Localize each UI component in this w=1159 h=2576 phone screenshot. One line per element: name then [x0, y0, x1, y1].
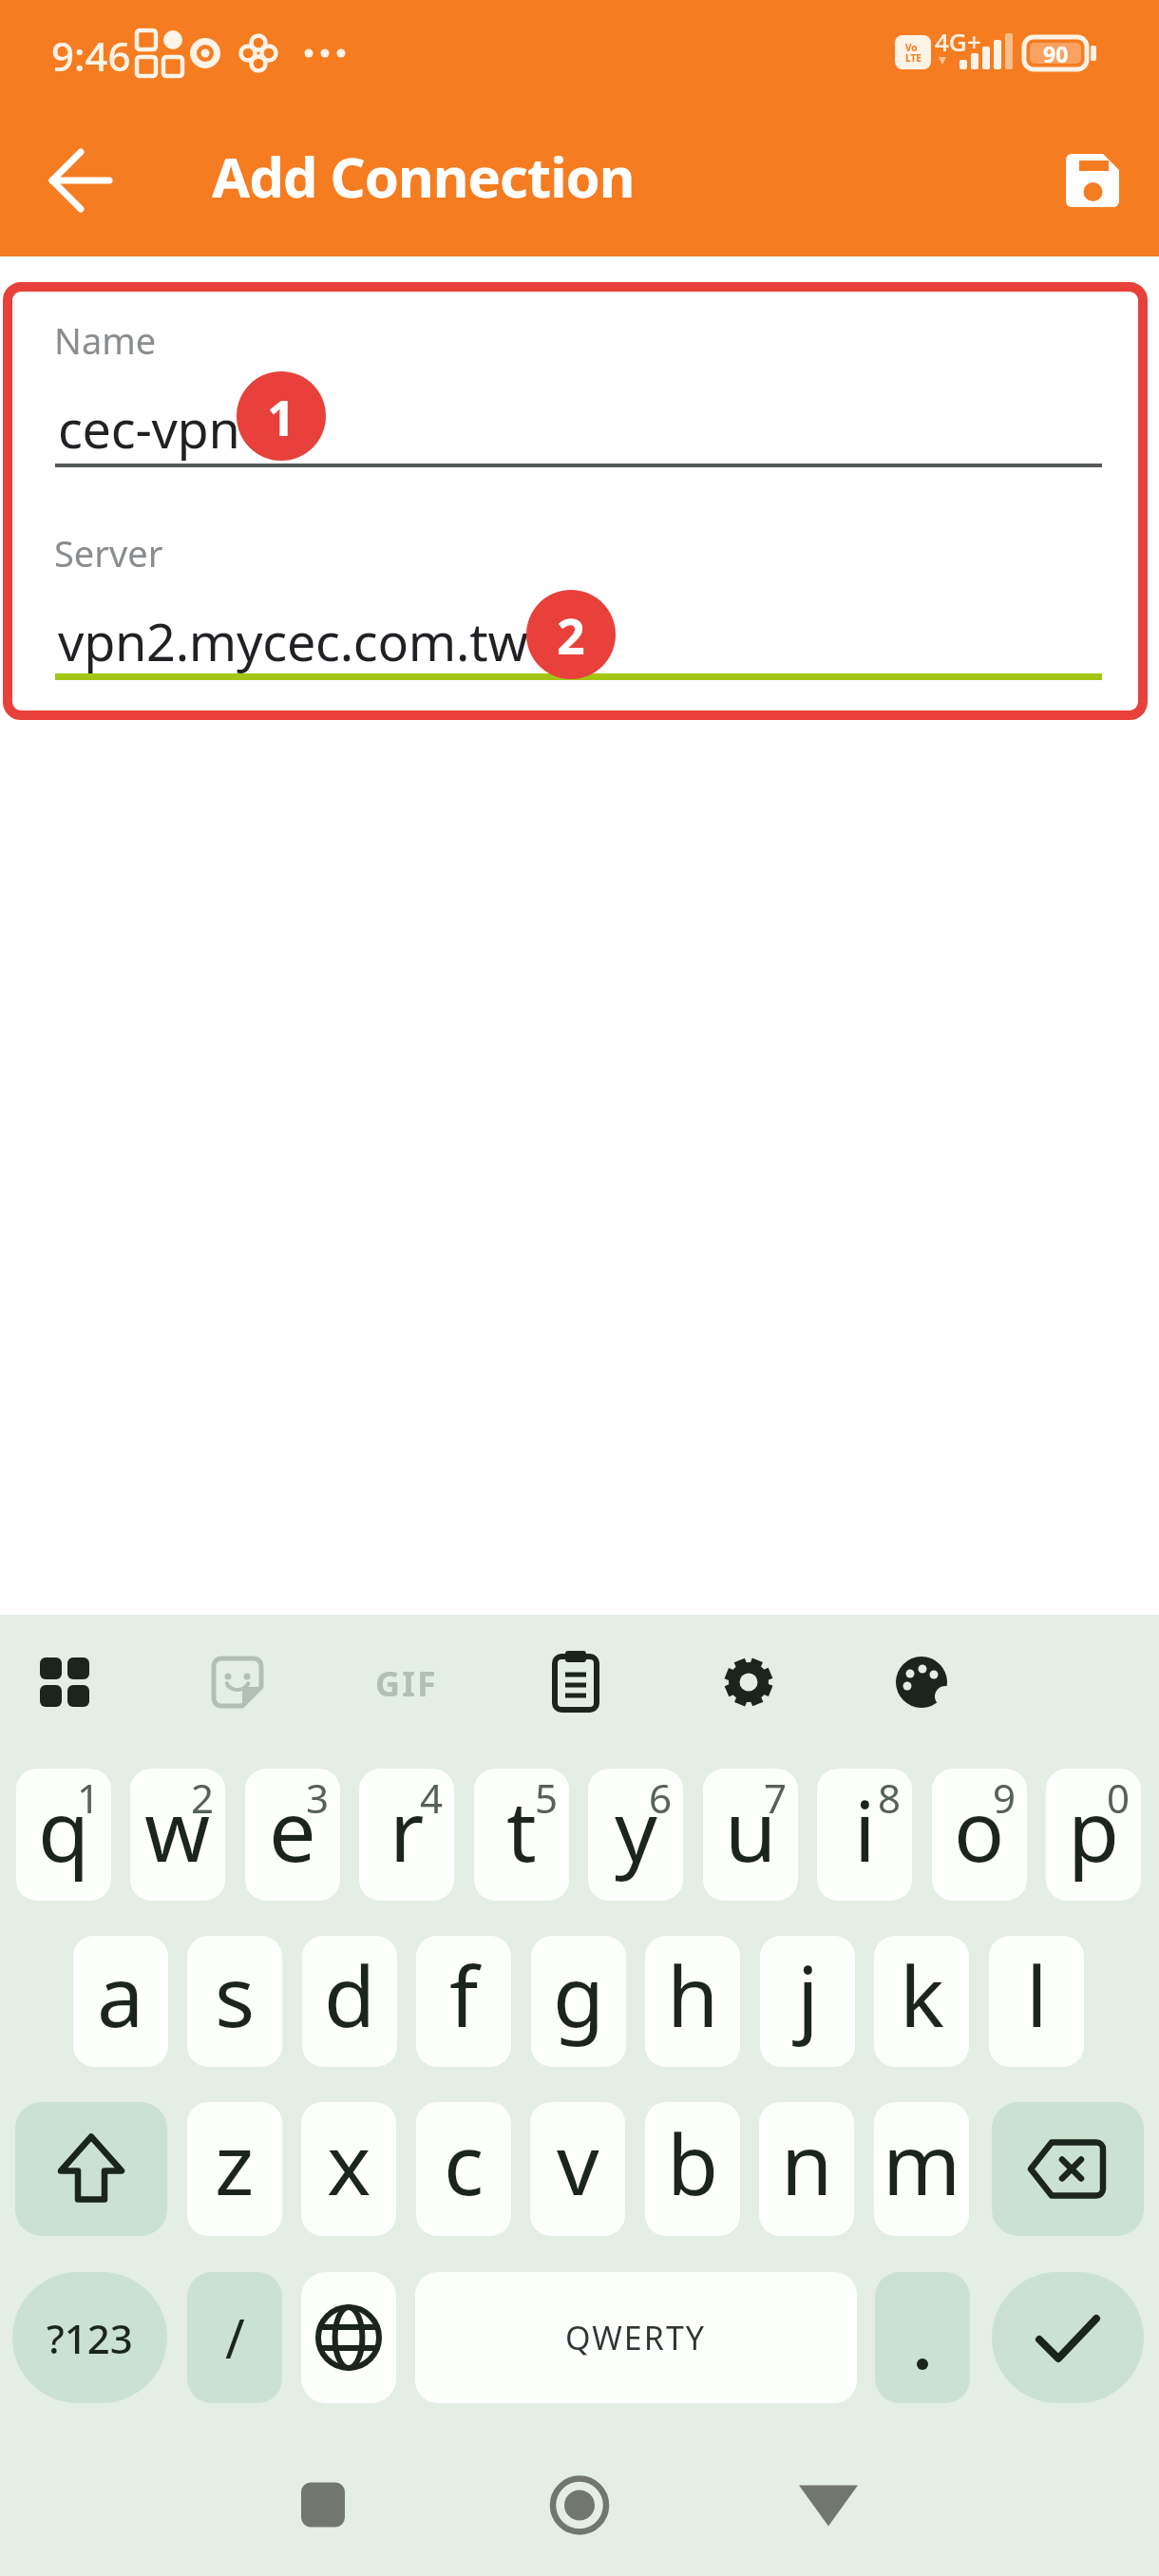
staticText: b — [667, 2106, 719, 2220]
button[interactable]: r — [359, 1769, 454, 1901]
staticText: 1 — [267, 383, 295, 450]
staticText: 4G+ — [935, 25, 981, 58]
button[interactable]: i — [817, 1769, 912, 1901]
button[interactable] — [266, 2455, 380, 2555]
button[interactable]: n — [759, 2102, 854, 2236]
button[interactable] — [535, 1638, 668, 1729]
staticText: t — [506, 1772, 537, 1886]
button[interactable]: k — [874, 1936, 969, 2067]
staticText: Name — [54, 315, 157, 365]
staticText: 9:46 — [51, 28, 131, 83]
button[interactable]: u — [703, 1769, 798, 1901]
button[interactable]: x — [301, 2102, 396, 2236]
staticText: o — [954, 1772, 1005, 1886]
staticText: 7 — [764, 1771, 788, 1825]
staticText: c — [444, 2106, 484, 2220]
button[interactable]: g — [531, 1936, 626, 2067]
staticText: 4 — [420, 1771, 444, 1825]
button[interactable]: / — [187, 2272, 282, 2403]
staticText: q — [38, 1772, 90, 1886]
button[interactable]: p — [1046, 1769, 1141, 1901]
button[interactable]: b — [645, 2102, 740, 2236]
staticText: w — [144, 1772, 211, 1886]
button[interactable] — [191, 1638, 324, 1729]
staticText: cec-vpn — [58, 393, 240, 464]
staticText: m — [883, 2106, 961, 2220]
staticText: 3 — [306, 1771, 330, 1825]
button[interactable] — [879, 1638, 1012, 1729]
staticText: k — [900, 1938, 944, 2052]
staticText: p — [1068, 1772, 1120, 1886]
button[interactable]: l — [989, 1936, 1084, 2067]
staticText: / — [225, 2301, 245, 2374]
button[interactable] — [522, 2455, 636, 2555]
staticText: h — [667, 1938, 719, 2052]
staticText: 1 — [77, 1771, 101, 1825]
button[interactable] — [707, 1638, 840, 1729]
button[interactable] — [301, 2272, 396, 2403]
button[interactable]: w — [130, 1769, 225, 1901]
staticText: ?123 — [47, 2311, 133, 2365]
staticText: f — [449, 1938, 479, 2052]
staticText: 9 — [993, 1771, 1016, 1825]
staticText: x — [327, 2106, 371, 2220]
button[interactable]: h — [645, 1936, 740, 2067]
button[interactable] — [28, 128, 133, 233]
staticText: r — [389, 1772, 425, 1886]
button[interactable] — [992, 2272, 1144, 2403]
button[interactable]: t — [474, 1769, 569, 1901]
staticText: 2 — [191, 1771, 215, 1825]
button[interactable] — [363, 1638, 496, 1729]
staticText: s — [215, 1938, 256, 2052]
button[interactable] — [15, 2102, 167, 2236]
staticText: 5 — [535, 1771, 559, 1825]
staticText: z — [215, 2106, 255, 2220]
staticText: 6 — [649, 1771, 673, 1825]
staticText: v — [557, 2106, 599, 2220]
button[interactable]: d — [302, 1936, 397, 2067]
button[interactable]: v — [530, 2102, 625, 2236]
staticText: 0 — [1107, 1771, 1130, 1825]
staticText: Vo LTE — [905, 41, 921, 65]
staticText: y — [615, 1772, 657, 1886]
staticText: 2 — [557, 601, 585, 669]
staticText: l — [1026, 1938, 1048, 2052]
staticText: 90 — [1043, 39, 1069, 68]
button[interactable]: j — [760, 1936, 855, 2067]
button[interactable]: q — [16, 1769, 111, 1901]
staticText: Server — [54, 528, 163, 578]
button[interactable]: s — [187, 1936, 282, 2067]
staticText: GIF — [375, 1660, 438, 1707]
staticText: u — [725, 1772, 777, 1886]
button[interactable]: ?123 — [12, 2272, 167, 2403]
button[interactable]: y — [588, 1769, 683, 1901]
staticText: Add Connection — [212, 139, 635, 214]
button[interactable]: m — [874, 2102, 969, 2236]
button[interactable]: f — [416, 1936, 511, 2067]
button[interactable]: o — [932, 1769, 1027, 1901]
button[interactable]: c — [416, 2102, 511, 2236]
staticText: e — [269, 1772, 316, 1886]
staticText: g — [553, 1938, 605, 2052]
staticText: j — [797, 1938, 819, 2052]
staticText: i — [854, 1772, 876, 1886]
staticText: a — [97, 1938, 144, 2052]
button[interactable]: QWERTY — [415, 2272, 857, 2403]
button[interactable] — [38, 513, 1121, 689]
staticText: QWERTY — [565, 2316, 707, 2359]
button[interactable]: a — [73, 1936, 168, 2067]
button[interactable]: z — [187, 2102, 282, 2236]
button[interactable] — [19, 1638, 152, 1729]
button[interactable] — [992, 2102, 1144, 2236]
staticText: vpn2.mycec.com.tw — [58, 606, 528, 676]
staticText: d — [324, 1938, 376, 2052]
button[interactable] — [771, 2455, 885, 2555]
staticText: 8 — [878, 1771, 902, 1825]
button[interactable]: e — [245, 1769, 340, 1901]
button[interactable] — [875, 2272, 970, 2403]
staticText: n — [781, 2106, 833, 2220]
button[interactable] — [1040, 128, 1145, 233]
button[interactable] — [38, 299, 1121, 470]
